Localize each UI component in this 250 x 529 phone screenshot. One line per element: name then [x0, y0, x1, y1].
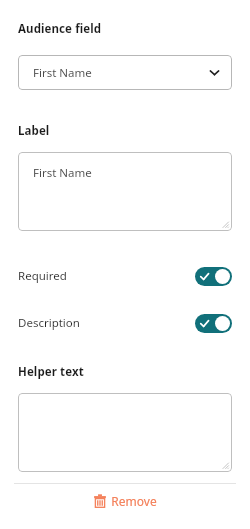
- staticText: Description: [18, 315, 80, 331]
- button[interactable]: First Name: [18, 152, 232, 231]
- staticText: Helper text: [18, 364, 84, 380]
- staticText: Required: [18, 268, 67, 284]
- button[interactable]: First Name: [18, 55, 232, 90]
- button[interactable]: Required: [18, 262, 232, 290]
- staticText: Label: [18, 123, 50, 139]
- button[interactable]: Description: [18, 309, 232, 337]
- staticText: Audience field: [18, 21, 102, 37]
- staticText: Remove: [111, 493, 157, 509]
- other: Remove: [93, 494, 107, 508]
- button[interactable]: [18, 393, 232, 472]
- staticText: First Name: [33, 165, 92, 181]
- button[interactable]: Remove: [0, 484, 250, 518]
- staticText: First Name: [33, 65, 92, 81]
